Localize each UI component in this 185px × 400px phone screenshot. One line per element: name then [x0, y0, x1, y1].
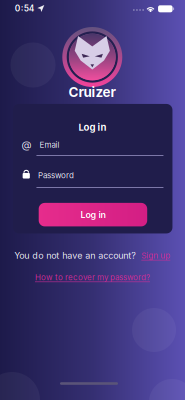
button[interactable]: How to recover my password? [35, 272, 150, 282]
staticText: Log in [78, 121, 106, 133]
staticText: Sign up [141, 251, 170, 260]
staticText: Password [38, 171, 74, 180]
staticText: Log in [80, 209, 105, 220]
staticText: 0:54 [15, 3, 35, 14]
button[interactable]: Log in [39, 203, 147, 226]
staticText: How to recover my password? [35, 272, 150, 282]
staticText: You do not have an account? [14, 250, 136, 261]
staticText: Cruizer [68, 84, 115, 100]
staticText: Email [39, 140, 59, 150]
button[interactable]: Sign up [141, 251, 170, 260]
staticText: @ [21, 138, 31, 151]
